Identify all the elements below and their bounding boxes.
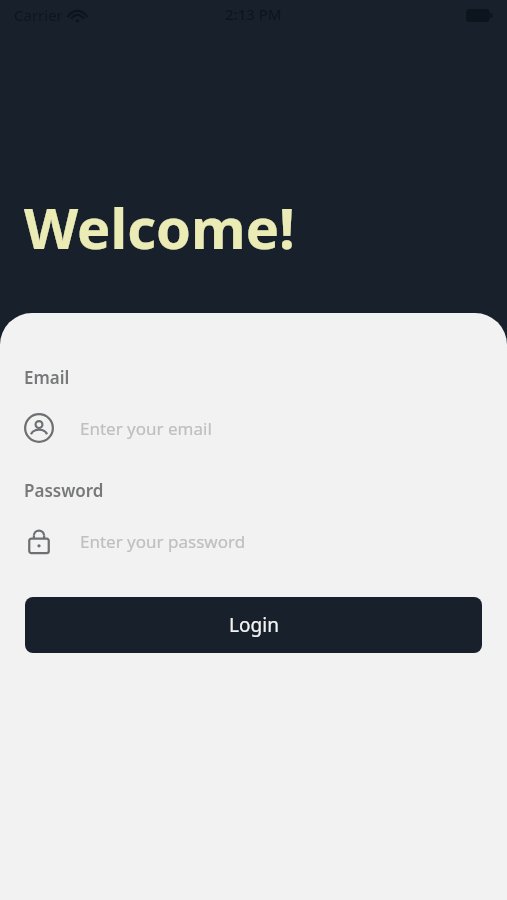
staticText: Login [229,612,279,638]
staticText: Welcome! [24,189,295,265]
staticText: Enter your email [80,417,212,440]
staticText: 2:13 PM [225,4,282,24]
staticText: Email [24,366,70,389]
other: Password [24,526,54,556]
staticText: Enter your password [80,530,246,553]
button[interactable]: Login [25,597,482,653]
staticText: Password [24,479,104,502]
other: Battery [466,9,493,22]
button[interactable]: Password [0,519,507,563]
staticText: Carrier [14,5,63,25]
other: Account [24,413,54,443]
button[interactable]: Account [0,406,507,450]
